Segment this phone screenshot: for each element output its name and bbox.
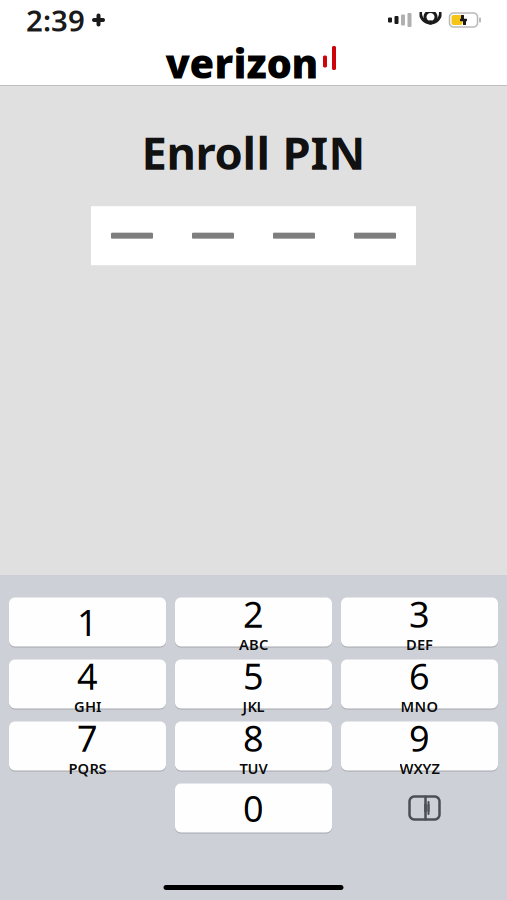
staticText: 2:39 [26,0,85,39]
button[interactable]: 7 [9,720,166,771]
button[interactable]: 5 [175,658,332,709]
staticText: 0 [243,784,264,832]
button[interactable]: 0 [175,782,332,833]
staticText: PQRS [68,759,106,778]
staticText: 7 [77,714,98,762]
button[interactable]: Delete [341,783,498,832]
staticText: GHI [74,697,101,716]
button[interactable]: 8 [175,720,332,771]
button[interactable]: 2 [175,596,332,647]
staticText: TUV [239,759,267,778]
button[interactable]: 1 [9,596,166,647]
staticText: 9 [409,714,430,762]
staticText: 1 [77,598,98,646]
button[interactable]: PIN entry field [91,206,416,265]
button[interactable]: 4 [9,658,166,709]
staticText: Enroll PIN [141,122,365,182]
button[interactable]: 3 [341,596,498,647]
staticText: 2 [243,590,264,638]
button[interactable]: 6 [341,658,498,709]
staticText: 8 [243,714,264,762]
staticText: verizon [165,36,318,89]
staticText: WXYZ [399,759,439,778]
staticText: JKL [242,697,264,716]
staticText: 5 [243,652,264,700]
staticText: DEF [406,635,433,654]
staticText: MNO [400,697,438,716]
staticText: 6 [409,652,430,700]
button[interactable]: 9 [341,720,498,771]
staticText: 4 [77,652,98,700]
staticText: 3 [409,590,430,638]
staticText: ABC [239,635,268,654]
